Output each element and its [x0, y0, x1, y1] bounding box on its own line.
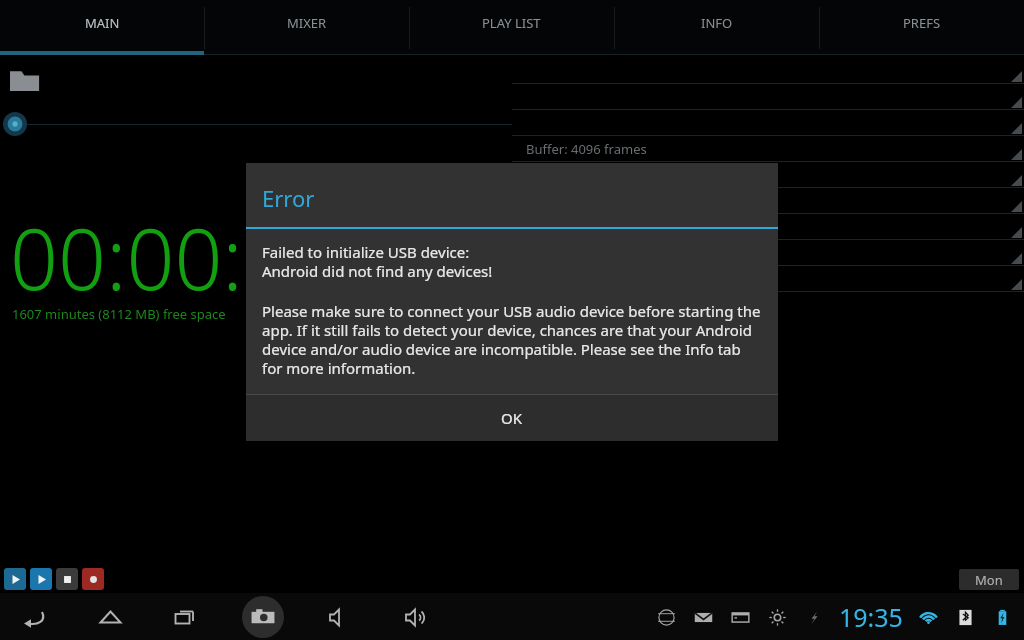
button[interactable]: Brightness: [765, 605, 789, 629]
button[interactable]: Wi-Fi: [916, 605, 940, 629]
staticText: PREFS: [903, 14, 941, 32]
button[interactable]: Play: [4, 568, 26, 590]
staticText: 1607 minutes (8112 MB) free space: [12, 305, 226, 323]
button[interactable]: Stop: [56, 568, 78, 590]
button[interactable]: Home: [90, 597, 130, 637]
button[interactable]: Playback position slider: [0, 112, 512, 136]
button[interactable]: [512, 162, 1024, 188]
button[interactable]: [512, 214, 1024, 240]
button[interactable]: Record: [82, 568, 104, 590]
button[interactable]: Back: [14, 597, 54, 637]
button[interactable]: Open folder: [6, 61, 44, 99]
staticText: Failed to initialize USB device: Android…: [262, 242, 493, 281]
button[interactable]: Play selection: [30, 568, 52, 590]
staticText: 00:00:00: [10, 200, 339, 314]
button[interactable]: Battery charging: [990, 605, 1014, 629]
staticText: Error: [262, 183, 315, 213]
button[interactable]: INFO: [614, 0, 819, 55]
staticText: PLAY LIST: [482, 14, 541, 32]
button[interactable]: OK: [246, 395, 778, 441]
button[interactable]: Email: [691, 605, 715, 629]
button[interactable]: Volume up: [396, 597, 436, 637]
button[interactable]: [512, 240, 1024, 266]
button[interactable]: Buffer: 4096 frames: [512, 136, 1024, 162]
button[interactable]: [512, 84, 1024, 110]
button[interactable]: OBD: [654, 605, 678, 629]
staticText: MAIN: [85, 14, 120, 32]
button[interactable]: Volume down: [320, 597, 360, 637]
button[interactable]: [512, 266, 1024, 292]
button[interactable]: Bluetooth: [953, 605, 977, 629]
staticText: MIXER: [287, 14, 327, 32]
button[interactable]: Flash: [802, 605, 826, 629]
staticText: OK: [501, 408, 523, 428]
button[interactable]: [512, 110, 1024, 136]
staticText: Please make sure to connect your USB aud…: [262, 301, 764, 378]
staticText: Mon: [975, 571, 1003, 589]
button[interactable]: Mon: [959, 569, 1019, 590]
button[interactable]: Recent apps: [166, 597, 206, 637]
button[interactable]: MAIN: [0, 0, 204, 55]
staticText: INFO: [701, 14, 733, 32]
staticText: Buffer: 4096 frames: [526, 140, 647, 158]
button[interactable]: Screenshot: [242, 596, 284, 638]
button[interactable]: PLAY LIST: [409, 0, 614, 55]
button[interactable]: PREFS: [819, 0, 1024, 55]
button[interactable]: [512, 58, 1024, 84]
button[interactable]: Terminal: [728, 605, 752, 629]
staticText: 19:35: [839, 600, 903, 634]
button[interactable]: MIXER: [204, 0, 409, 55]
button[interactable]: [512, 188, 1024, 214]
